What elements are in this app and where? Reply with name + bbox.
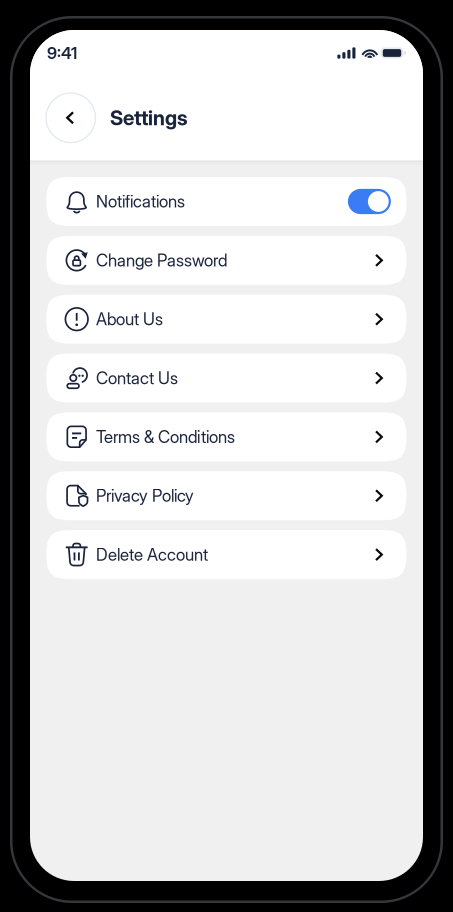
button[interactable]: Contact Us [46, 354, 406, 403]
button[interactable]: Terms & Conditions [46, 412, 406, 461]
staticText: Terms & Conditions [96, 427, 235, 447]
staticText: Change Password [96, 250, 227, 270]
staticText: Settings [110, 105, 188, 130]
button[interactable]: Change Password [46, 236, 406, 285]
staticText: Notifications [96, 191, 185, 212]
staticText: Delete Account [96, 544, 208, 565]
button[interactable]: Notifications [46, 177, 406, 226]
button[interactable]: Delete Account [46, 530, 406, 579]
button[interactable]: Privacy Policy [46, 471, 406, 520]
button[interactable]: Back [46, 93, 95, 142]
button[interactable]: About Us [46, 295, 406, 344]
staticText: Privacy Policy [96, 486, 194, 506]
staticText: 9:41 [47, 43, 77, 63]
staticText: Contact Us [96, 368, 178, 388]
staticText: About Us [96, 309, 163, 329]
